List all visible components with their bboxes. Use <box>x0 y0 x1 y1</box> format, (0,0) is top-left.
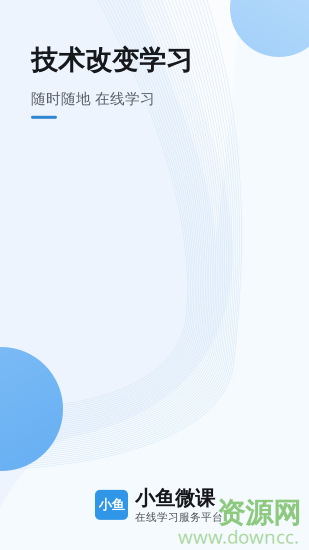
staticText: www.downcc.com <box>178 524 299 550</box>
staticText: 技术改变学习 <box>31 44 193 77</box>
staticText: 小鱼微课 <box>135 486 215 511</box>
staticText: 随时随地 在线学习 <box>31 90 155 108</box>
staticText: 在线学习服务平台 <box>135 511 223 524</box>
staticText: 小鱼 <box>98 497 124 513</box>
staticText: 资源网 <box>217 496 301 530</box>
